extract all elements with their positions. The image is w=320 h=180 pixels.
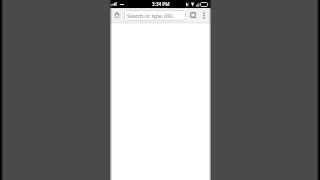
button[interactable]: Tabs <box>186 8 199 22</box>
button[interactable]: More options <box>199 8 208 22</box>
button[interactable]: Home <box>110 8 124 22</box>
button[interactable]: Search or type URL <box>124 10 186 21</box>
staticText: 3:34 PM <box>152 1 170 7</box>
staticText: Search or type URL <box>127 12 174 19</box>
